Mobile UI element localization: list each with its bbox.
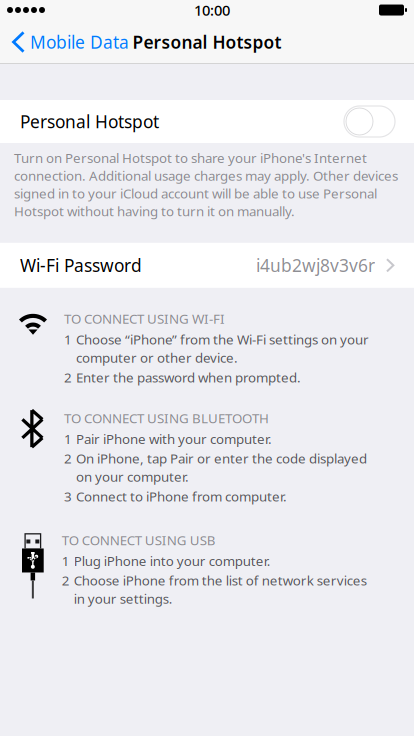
staticText: 1: [64, 430, 72, 448]
staticText: Wi-Fi Password: [20, 254, 142, 277]
staticText: Turn on Personal Hotspot to share your i…: [14, 149, 398, 220]
staticText: 2: [62, 572, 70, 589]
staticText: Personal Hotspot: [132, 30, 281, 53]
staticText: On iPhone, tap Pair or enter the code di…: [76, 450, 367, 485]
button[interactable]: Personal Hotspot: [0, 100, 414, 143]
staticText: i4ub2wj8v3v6r: [256, 254, 375, 277]
staticText: Personal Hotspot: [20, 110, 159, 133]
staticText: 1: [64, 330, 72, 348]
staticText: 2: [64, 368, 72, 386]
button[interactable]: Wi-Fi Password: [0, 243, 414, 288]
staticText: Enter the password when prompted.: [76, 368, 301, 386]
staticText: TO CONNECT USING BLUETOOTH: [64, 409, 269, 427]
staticText: Plug iPhone into your computer.: [74, 552, 271, 570]
staticText: 1: [62, 552, 70, 570]
staticText: Mobile Data: [30, 30, 129, 53]
staticText: 2: [64, 450, 72, 467]
staticText: Choose “iPhone” from the Wi-Fi settings …: [76, 330, 369, 366]
staticText: Choose iPhone from the list of network s…: [74, 572, 367, 607]
button[interactable]: Mobile Data: [0, 22, 129, 61]
staticText: 10:00: [194, 0, 230, 20]
staticText: 3: [64, 487, 72, 505]
staticText: TO CONNECT USING WI-FI: [64, 310, 225, 327]
staticText: Connect to iPhone from computer.: [76, 487, 287, 505]
staticText: Pair iPhone with your computer.: [76, 430, 272, 448]
staticText: TO CONNECT USING USB: [62, 531, 216, 549]
